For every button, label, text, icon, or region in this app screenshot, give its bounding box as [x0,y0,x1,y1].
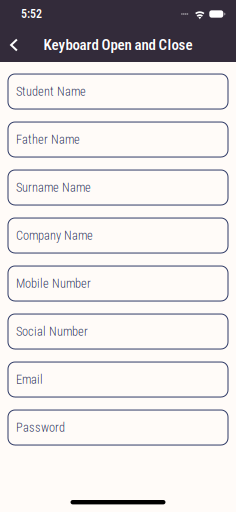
button[interactable]: Social Number [8,314,228,349]
button[interactable]: Company Name [8,218,228,253]
staticText: Password [16,420,65,435]
button[interactable]: Surname Name [8,170,228,205]
button[interactable]: Email [8,362,228,397]
staticText: Keyboard Open and Close [43,36,192,54]
staticText: Social Number [16,324,88,339]
staticText: Email [16,372,43,387]
button[interactable]: Student Name [8,74,228,109]
staticText: Student Name [16,84,86,99]
staticText: Surname Name [16,180,91,195]
staticText: Company Name [16,228,93,243]
button[interactable]: Mobile Number [8,266,228,301]
button[interactable]: Father Name [8,122,228,157]
button[interactable]: Back [3,29,25,61]
button[interactable]: Password [8,410,228,445]
staticText: Mobile Number [16,276,91,291]
staticText: 5:52 [21,7,42,21]
staticText: Father Name [16,132,80,147]
